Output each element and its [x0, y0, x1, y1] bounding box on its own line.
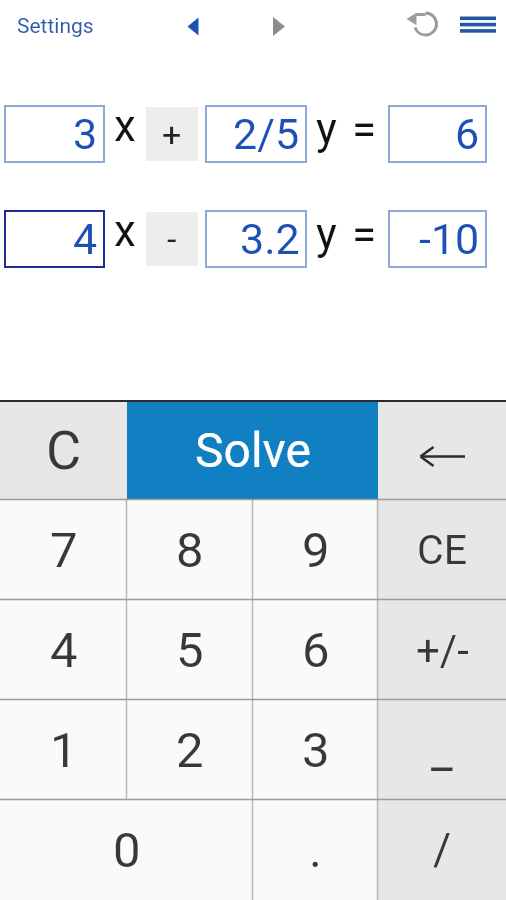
button[interactable]: 6 [388, 105, 487, 163]
staticText: Solve [195, 422, 311, 478]
staticText: x [114, 100, 136, 152]
button[interactable]: + [146, 107, 198, 161]
staticText: y [316, 103, 337, 155]
button[interactable]: CE [378, 500, 506, 600]
button[interactable]: - [146, 212, 198, 266]
button[interactable] [258, 6, 302, 46]
staticText: 7 [50, 522, 78, 579]
staticText: Settings [17, 14, 94, 39]
button[interactable]: 4 [4, 210, 105, 268]
staticText: _ [431, 722, 453, 778]
staticText: 9 [302, 522, 330, 579]
staticText: 8 [176, 522, 204, 579]
button[interactable]: 3 [4, 105, 105, 163]
staticText: 4 [73, 214, 98, 264]
staticText: x [114, 205, 136, 257]
staticText: 4 [50, 622, 78, 679]
button[interactable]: _ [378, 700, 506, 800]
button[interactable]: 9 [253, 500, 378, 600]
staticText: 6 [455, 109, 480, 159]
staticText: = [352, 209, 377, 261]
button[interactable]: 7 [0, 500, 127, 600]
button[interactable]: / [378, 800, 506, 900]
button[interactable]: 6 [253, 600, 378, 700]
staticText: = [352, 104, 377, 156]
button[interactable]: . [253, 800, 378, 900]
staticText: y [316, 208, 337, 260]
button[interactable]: 5 [127, 600, 253, 700]
button[interactable]: 3 [253, 700, 378, 800]
button[interactable]: Solve [127, 400, 378, 500]
staticText: + [162, 114, 182, 154]
staticText: 3.2 [240, 214, 300, 264]
staticText: CE [417, 526, 467, 574]
staticText: +/- [416, 626, 469, 675]
button[interactable]: Settings [0, 8, 110, 44]
staticText: . [309, 822, 322, 879]
button[interactable] [398, 4, 442, 48]
button[interactable]: +/- [378, 600, 506, 700]
button[interactable] [172, 6, 216, 46]
staticText: 3 [73, 109, 98, 159]
button[interactable]: 1 [0, 700, 127, 800]
staticText: - [167, 219, 177, 259]
button[interactable]: 3.2 [205, 210, 307, 268]
staticText: 2/5 [233, 109, 300, 159]
staticText: C [46, 419, 82, 482]
staticText: 6 [302, 622, 330, 679]
staticText: -10 [419, 214, 480, 264]
staticText: 1 [50, 722, 78, 779]
button[interactable]: 8 [127, 500, 253, 600]
button[interactable]: 0 [0, 800, 253, 900]
button[interactable]: 4 [0, 600, 127, 700]
button[interactable]: C [0, 400, 127, 500]
staticText: 0 [113, 822, 141, 879]
staticText: 3 [302, 722, 330, 779]
staticText: 5 [176, 622, 204, 679]
button[interactable] [450, 4, 504, 44]
button[interactable]: -10 [388, 210, 487, 268]
button[interactable] [378, 400, 506, 500]
button[interactable]: 2/5 [205, 105, 307, 163]
staticText: / [433, 824, 452, 876]
staticText: 2 [176, 722, 204, 779]
button[interactable]: 2 [127, 700, 253, 800]
